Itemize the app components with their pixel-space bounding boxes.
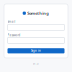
button[interactable]: Sign in xyxy=(7,48,64,53)
staticText: Sign in xyxy=(31,49,41,53)
staticText: Password xyxy=(7,33,20,37)
button[interactable] xyxy=(7,37,64,43)
button[interactable] xyxy=(7,24,64,30)
staticText: v1.0 xyxy=(33,62,39,65)
staticText: Something xyxy=(27,10,49,16)
staticText: Email xyxy=(7,20,15,23)
